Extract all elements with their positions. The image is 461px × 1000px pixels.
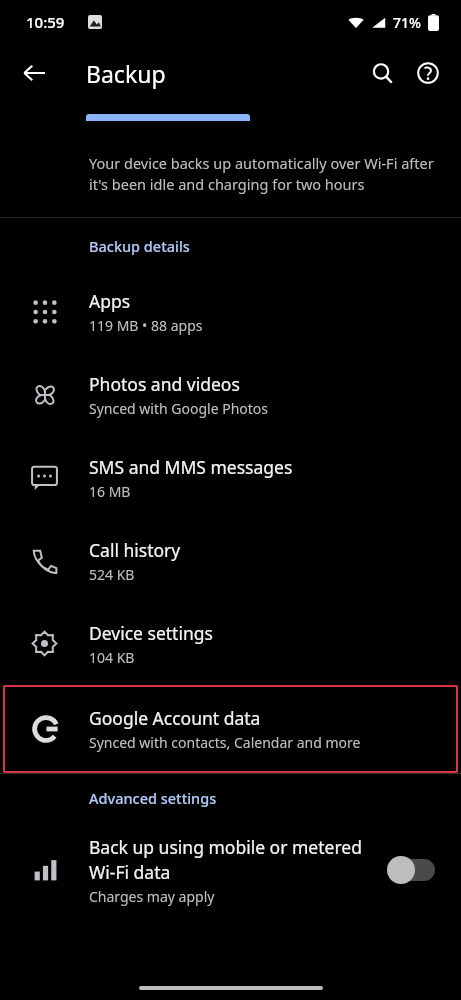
staticText: 119 MB • 88 apps [89, 316, 203, 335]
staticText: Backup details [89, 236, 190, 256]
staticText: 104 KB [89, 648, 135, 667]
staticText: 16 MB [89, 482, 131, 501]
staticText: SMS and MMS messages [89, 455, 293, 479]
staticText: Advanced settings [89, 788, 217, 808]
staticText: Synced with contacts, Calendar and more [89, 733, 361, 752]
button[interactable]: Photos and videos [0, 353, 461, 436]
button[interactable]: Device settings [0, 602, 461, 685]
staticText: Your device backs up automatically over … [89, 153, 435, 195]
button[interactable]: Back up using mobile or metered Wi-Fi da… [0, 820, 461, 920]
button[interactable]: SMS and MMS messages [0, 436, 461, 519]
staticText: Photos and videos [89, 372, 240, 396]
staticText: Call history [89, 538, 181, 562]
staticText: Device settings [89, 621, 213, 645]
button[interactable]: Search [359, 50, 405, 96]
button[interactable]: Back [12, 51, 56, 95]
staticText: Synced with Google Photos [89, 399, 269, 418]
button[interactable]: Help [405, 50, 451, 96]
staticText: Charges may apply [89, 887, 215, 906]
staticText: Back up using mobile or metered Wi-Fi da… [89, 835, 377, 885]
button[interactable]: Toggle backup over metered data [387, 855, 439, 885]
staticText: Apps [89, 289, 131, 313]
staticText: 10:59 [26, 12, 65, 32]
staticText: 71% [393, 13, 421, 32]
button[interactable]: Call history [0, 519, 461, 602]
button[interactable]: Apps [0, 270, 461, 353]
button[interactable]: Google Account data [3, 685, 458, 773]
staticText: Backup [86, 58, 166, 89]
staticText: Google Account data [89, 706, 261, 730]
staticText: 524 KB [89, 565, 135, 584]
